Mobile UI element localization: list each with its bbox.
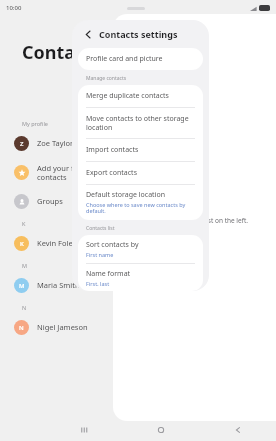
staticText: Default storage location — [86, 190, 165, 200]
staticText: Move contacts to other storage location — [86, 114, 189, 132]
staticText: First name — [86, 251, 114, 258]
staticText: M — [22, 262, 27, 269]
staticText: My profile — [22, 120, 48, 127]
staticText: Add your favourite contacts — [37, 163, 103, 182]
button[interactable]: Profile card and picture — [78, 48, 203, 70]
staticText: Profile card and picture — [86, 54, 163, 64]
button[interactable]: Groups — [0, 187, 118, 215]
staticText: K — [20, 240, 24, 248]
staticText: Contacts settings — [99, 28, 178, 40]
staticText: Zoe Taylor — [37, 138, 74, 148]
staticText: Contacts list — [86, 225, 115, 232]
staticText: N — [22, 304, 27, 311]
staticText: Nigel Jameson — [37, 322, 88, 332]
staticText: Manage contacts — [86, 75, 127, 82]
staticText: Export contacts — [86, 168, 137, 178]
staticText: Name format — [86, 269, 131, 279]
button[interactable]: K — [0, 229, 118, 257]
button[interactable]: Back — [81, 27, 95, 41]
button[interactable]: N — [0, 313, 118, 341]
staticText: Groups — [37, 196, 63, 206]
button[interactable]: Move contacts to other storage location — [78, 108, 203, 138]
staticText: K — [22, 220, 26, 227]
button[interactable]: Export contacts — [78, 162, 203, 184]
button[interactable]: Back — [228, 420, 248, 440]
staticText: N — [19, 324, 24, 332]
button[interactable]: Name format — [78, 264, 203, 291]
staticText: Kevin Foley — [37, 238, 77, 248]
button[interactable]: Recents — [74, 420, 94, 440]
button[interactable]: Add your favourite contacts — [0, 157, 118, 187]
staticText: Import contacts — [86, 145, 139, 155]
staticText: Z — [20, 140, 24, 148]
staticText: Merge duplicate contacts — [86, 91, 169, 101]
staticText: Sort contacts by — [86, 240, 139, 250]
staticText: 10:00 — [6, 4, 22, 12]
staticText: M — [19, 282, 25, 290]
button[interactable]: Import contacts — [78, 139, 203, 161]
button[interactable]: Sort contacts by — [78, 235, 203, 263]
button[interactable]: Home — [151, 420, 171, 440]
button[interactable]: Merge duplicate contacts — [78, 85, 203, 107]
staticText: Contacts — [22, 40, 102, 65]
staticText: Select a contact from the list on the le… — [127, 216, 267, 225]
staticText: Maria Smith — [37, 280, 80, 290]
button[interactable]: Default storage location — [78, 185, 203, 220]
staticText: First, last — [86, 280, 110, 286]
button[interactable]: Z — [0, 129, 118, 157]
button[interactable]: M — [0, 271, 118, 299]
staticText: Choose where to save new contacts by def… — [86, 201, 195, 215]
